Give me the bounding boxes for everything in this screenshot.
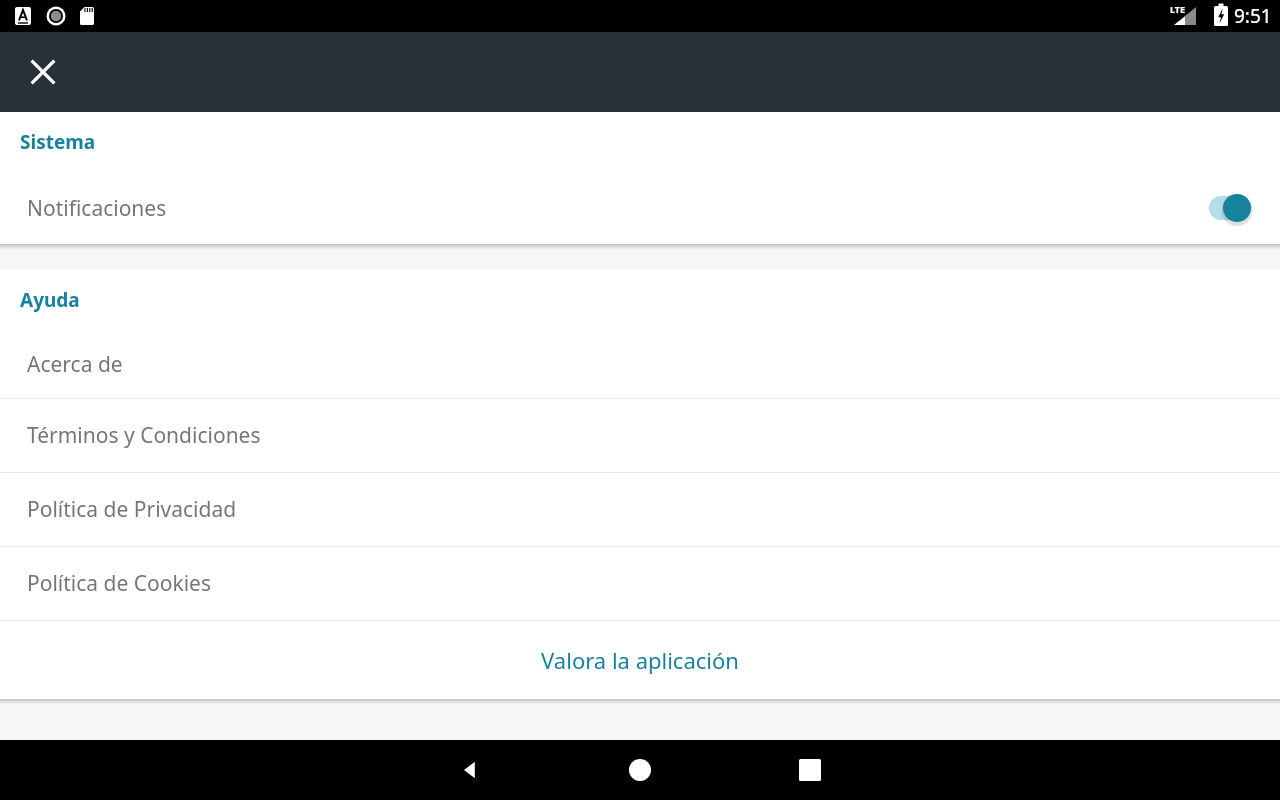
staticText: Política de Privacidad bbox=[27, 495, 237, 524]
button[interactable]: Cerrar bbox=[19, 48, 67, 96]
button[interactable]: Acerca de bbox=[0, 330, 1280, 398]
button[interactable]: Recientes bbox=[786, 746, 834, 794]
button[interactable]: Política de Cookies bbox=[0, 547, 1280, 620]
button[interactable]: Valora la aplicación bbox=[0, 621, 1280, 699]
staticText: Ayuda bbox=[20, 287, 80, 313]
staticText: Términos y Condiciones bbox=[27, 421, 261, 450]
staticText: 9:51 bbox=[1234, 3, 1272, 29]
button[interactable]: Inicio bbox=[616, 746, 664, 794]
staticText: Notificaciones bbox=[27, 194, 167, 223]
button[interactable]: Atrás bbox=[446, 746, 494, 794]
staticText: Acerca de bbox=[27, 350, 123, 379]
staticText: Política de Cookies bbox=[27, 569, 212, 598]
button[interactable]: Términos y Condiciones bbox=[0, 399, 1280, 472]
button[interactable]: Notificaciones bbox=[0, 172, 1280, 244]
staticText: Valora la aplicación bbox=[541, 645, 739, 675]
staticText: Sistema bbox=[20, 129, 96, 155]
button[interactable]: Activar notificaciones bbox=[1207, 186, 1263, 230]
button[interactable]: Política de Privacidad bbox=[0, 473, 1280, 546]
staticText: LTE bbox=[1170, 3, 1186, 15]
